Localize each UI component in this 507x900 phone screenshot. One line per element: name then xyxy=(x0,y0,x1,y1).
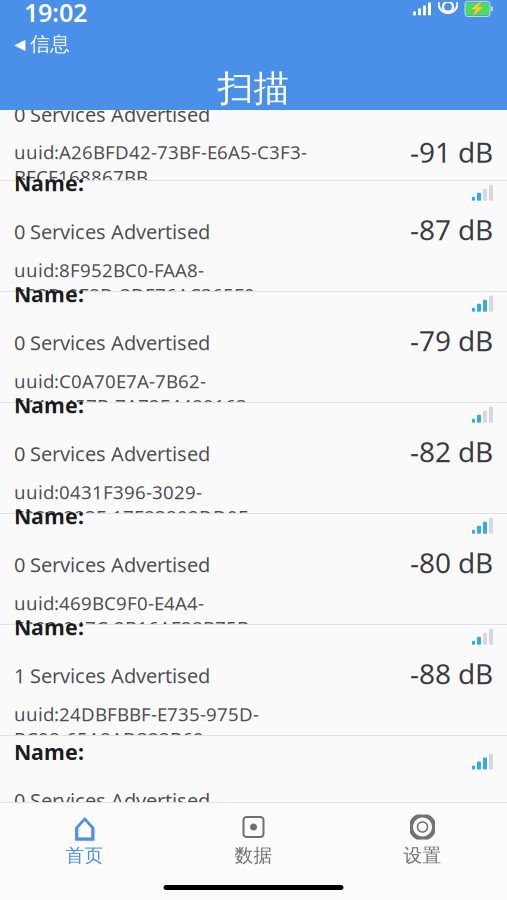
staticText: Name: xyxy=(14,738,84,766)
staticText: ◀ xyxy=(14,36,25,52)
staticText: 信息 xyxy=(30,32,70,56)
staticText: uuid:C0A70E7A-7B62-F44A-457B-7A72E448916… xyxy=(14,369,247,418)
staticText: 0 Services Advertised xyxy=(14,218,210,245)
staticText: 0 Services Advertised xyxy=(14,551,210,578)
staticText: 0 Services Advertised xyxy=(14,787,210,813)
staticText: 0 Services Advertised xyxy=(14,101,210,127)
staticText: -91 dB xyxy=(410,133,493,171)
button[interactable]: ◀ xyxy=(10,30,74,58)
button[interactable]: Name: xyxy=(0,625,507,735)
staticText: 0 Services Advertised xyxy=(14,440,210,467)
staticText: uuid:24DBFBBF-E735-975D-BC98-65A8AD323B6… xyxy=(14,702,259,751)
staticText: -82 dB xyxy=(410,433,493,470)
staticText: Name: xyxy=(14,280,84,308)
staticText: 首页 xyxy=(65,844,103,867)
button[interactable]: 设置 xyxy=(338,811,507,869)
staticText: 数据 xyxy=(234,844,272,867)
button[interactable]: Name: xyxy=(0,181,507,291)
staticText: 设置 xyxy=(403,844,441,867)
staticText: uuid:A26BFD42-73BF-E6A5-C3F3-BFCE168867B… xyxy=(14,139,307,189)
button[interactable]: Name: xyxy=(0,514,507,624)
staticText: ⌂ xyxy=(72,804,97,850)
staticText: uuid:469BC9F0-E4A4-F002-047C-2B16AE28B75… xyxy=(14,591,249,640)
staticText: Name: xyxy=(14,613,84,641)
staticText: Name: xyxy=(14,391,84,419)
staticText: Name: xyxy=(14,502,84,530)
button[interactable]: Name: xyxy=(0,403,507,513)
button[interactable]: 数据 xyxy=(169,811,338,869)
staticText: uuid:8F952BC0-FAA8-B82D-0F8D-3DF76AC365E… xyxy=(14,258,255,307)
staticText: 0 Services Advertised xyxy=(14,329,210,356)
button[interactable]: ⌂ xyxy=(0,811,169,869)
button[interactable]: Name: xyxy=(0,292,507,402)
staticText: -88 dB xyxy=(410,655,493,692)
staticText: uuid:0431F396-3029-F923-893F-17F83802DD0… xyxy=(14,480,248,529)
staticText: 扫描 xyxy=(217,66,289,111)
button[interactable]: 0 Services Advertised xyxy=(0,110,507,180)
staticText: 1 Services Advertised xyxy=(14,662,210,689)
staticText: ⚡ xyxy=(469,1,486,16)
staticText: -87 dB xyxy=(410,211,493,248)
button[interactable]: Name: xyxy=(0,736,507,801)
staticText: -80 dB xyxy=(410,544,493,581)
staticText: 19:02 xyxy=(24,0,87,29)
staticText: Name: xyxy=(14,169,84,197)
staticText: -79 dB xyxy=(410,322,493,359)
